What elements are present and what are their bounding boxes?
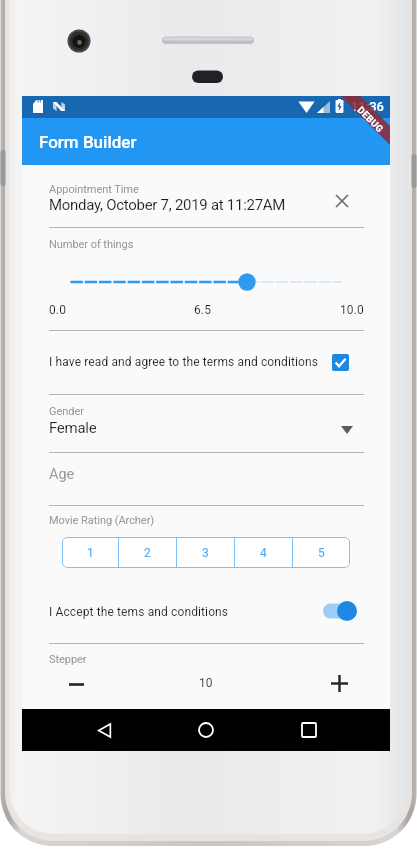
staticText: Appointment Time xyxy=(49,183,139,196)
staticText: I have read and agree to the terms and c… xyxy=(49,355,319,369)
staticText: Movie Rating (Archer) xyxy=(49,514,155,527)
button[interactable]: 2 xyxy=(119,537,176,568)
staticText: Form Builder xyxy=(39,132,137,152)
staticText: 4 xyxy=(260,546,267,560)
staticText: 10 xyxy=(199,676,213,690)
staticText: 2 xyxy=(144,546,151,560)
button[interactable]: Home xyxy=(185,709,227,751)
staticText: 0.0 xyxy=(49,303,67,317)
staticText: 6.5 xyxy=(194,303,212,317)
button[interactable]: 3 xyxy=(177,537,234,568)
staticText: 10.0 xyxy=(340,303,364,317)
button[interactable]: Clear appointment time xyxy=(328,187,356,215)
button[interactable]: 4 xyxy=(235,537,292,568)
staticText: Female xyxy=(49,419,97,437)
staticText: 11:36 xyxy=(351,99,384,114)
staticText: 5 xyxy=(318,546,325,560)
staticText: Gender xyxy=(49,405,84,418)
button[interactable]: Number of things slider xyxy=(22,273,390,291)
button[interactable]: 5 xyxy=(293,537,350,568)
staticText: Stepper xyxy=(49,653,87,666)
button[interactable]: Increment xyxy=(325,669,353,697)
button[interactable]: Decrement xyxy=(62,670,90,698)
staticText: DEBUG xyxy=(355,104,386,135)
staticText: Number of things xyxy=(49,238,134,251)
button[interactable]: Back xyxy=(83,709,125,751)
staticText: 1 xyxy=(87,546,94,560)
button[interactable]: 1 xyxy=(62,537,118,568)
button[interactable]: Recent apps xyxy=(288,709,330,751)
staticText: I Accept the tems and conditions xyxy=(49,605,229,619)
button[interactable]: I accept the terms switch xyxy=(319,598,363,624)
staticText: 3 xyxy=(202,546,209,560)
button[interactable]: I have read and agree checkbox xyxy=(328,350,352,374)
staticText: Monday, October 7, 2019 at 11:27AM xyxy=(49,196,286,214)
button[interactable]: Select gender xyxy=(334,417,360,443)
staticText: Age xyxy=(49,466,75,483)
